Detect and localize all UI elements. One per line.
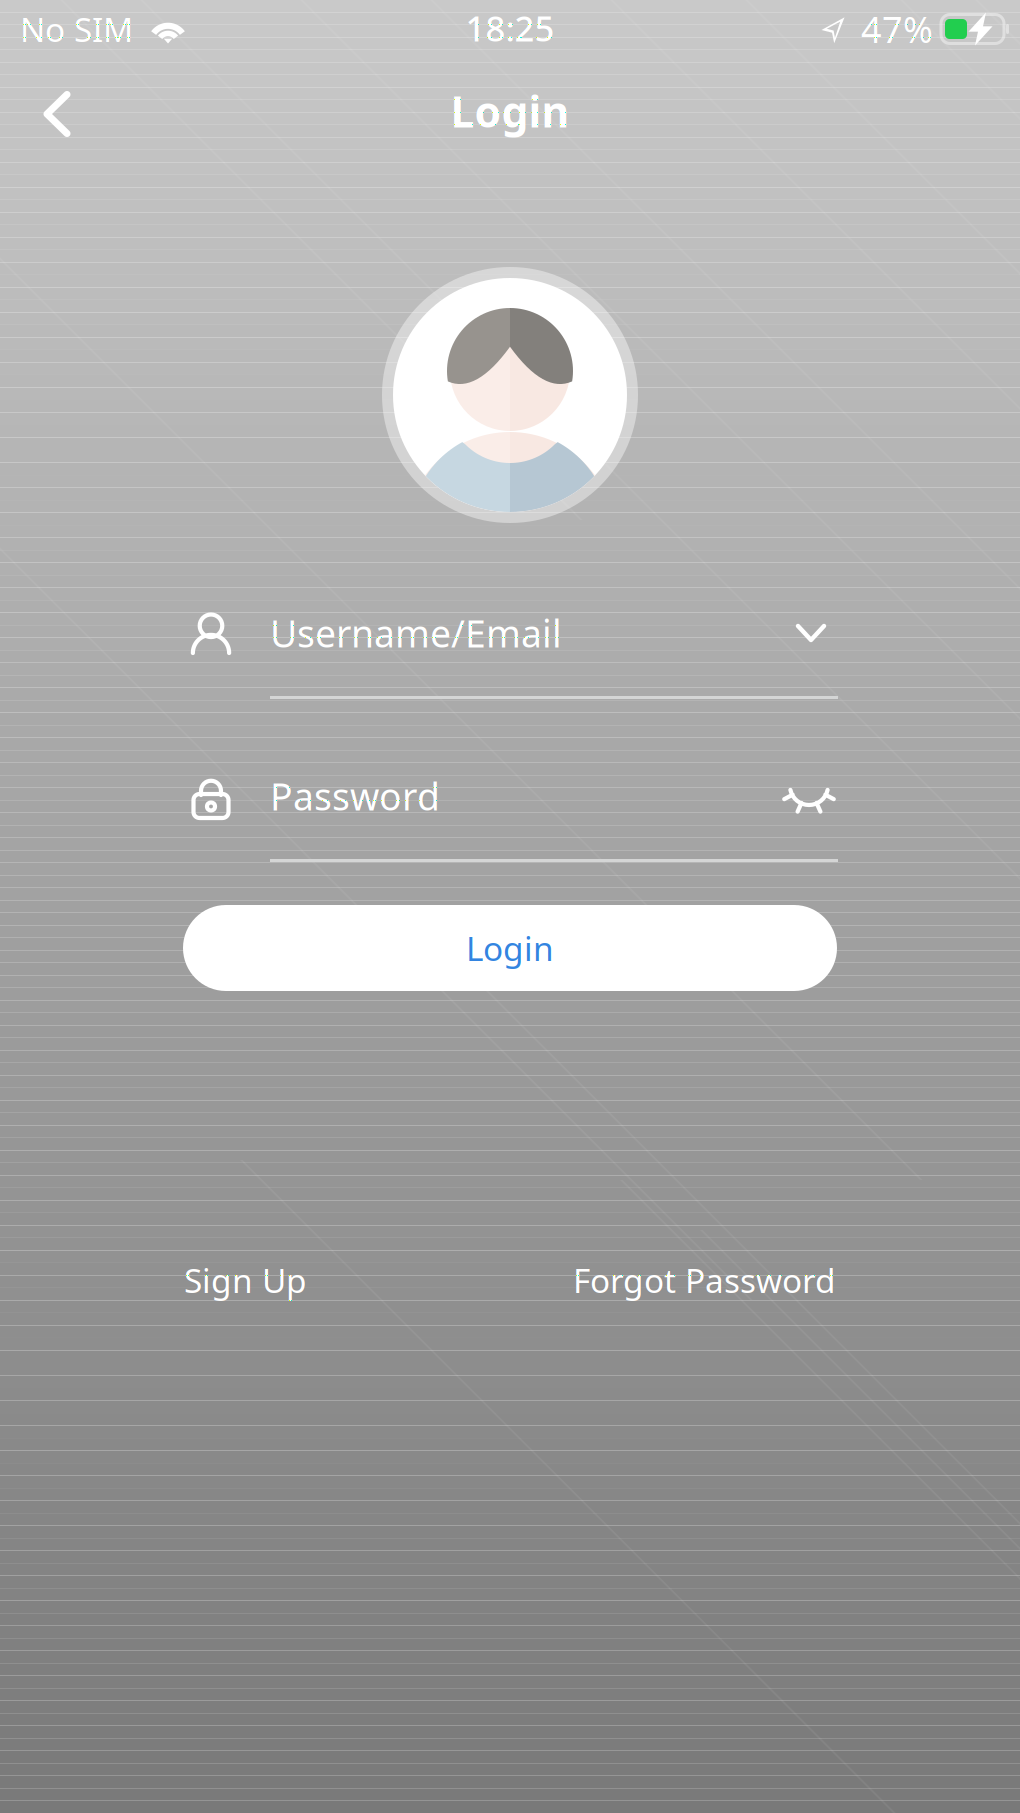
staticText: 18:25 <box>465 5 554 51</box>
button[interactable]: Show password <box>780 774 838 818</box>
staticText: Password <box>270 771 440 821</box>
staticText: Login <box>450 83 569 139</box>
staticText: Login <box>466 926 554 970</box>
button[interactable]: Choose account <box>784 612 838 654</box>
button[interactable]: Forgot Password <box>573 1258 836 1302</box>
staticText: Sign Up <box>184 1258 307 1302</box>
button[interactable]: Sign Up <box>184 1258 307 1302</box>
staticText: No SIM <box>20 7 133 51</box>
button[interactable]: Login <box>183 905 837 991</box>
staticText: 47% <box>861 5 933 53</box>
staticText: Forgot Password <box>573 1258 836 1302</box>
staticText: Username/Email <box>270 608 562 658</box>
button[interactable]: Back <box>0 63 101 148</box>
